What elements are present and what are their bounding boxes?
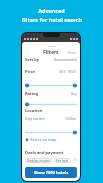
- staticText: 10.0km: [65, 117, 77, 121]
- button[interactable]: Reset: [68, 51, 77, 55]
- staticText: Any: [71, 92, 77, 96]
- staticText: 49 $ - 900 $: [59, 70, 77, 74]
- button[interactable]: Select on map: [25, 137, 57, 142]
- button[interactable]: City center: [25, 116, 46, 121]
- staticText: Deals and payment: [25, 150, 64, 155]
- button[interactable]: Price: [25, 69, 77, 74]
- staticText: Free hotel: [56, 159, 69, 163]
- button[interactable]: Free hotel: [56, 158, 69, 163]
- staticText: Breakfast included: [27, 159, 50, 163]
- button[interactable]: Show 7000 hotels: [25, 167, 77, 178]
- button[interactable]: Sort by: [25, 57, 77, 62]
- staticText: filters for hotel search: [22, 16, 82, 23]
- button[interactable]: Rating: [25, 91, 77, 96]
- staticText: Filters: [43, 49, 59, 56]
- staticText: Select on map: [30, 137, 57, 142]
- staticText: Location: [25, 108, 43, 113]
- staticText: Advanced: [38, 7, 65, 14]
- button[interactable]: Breakfast included: [27, 158, 50, 163]
- staticText: Show 7000 hotels: [34, 170, 69, 175]
- staticText: Price: [25, 69, 35, 74]
- staticText: Sort by: [25, 57, 39, 62]
- staticText: Recommended: [54, 58, 77, 62]
- staticText: Rating: [25, 91, 39, 96]
